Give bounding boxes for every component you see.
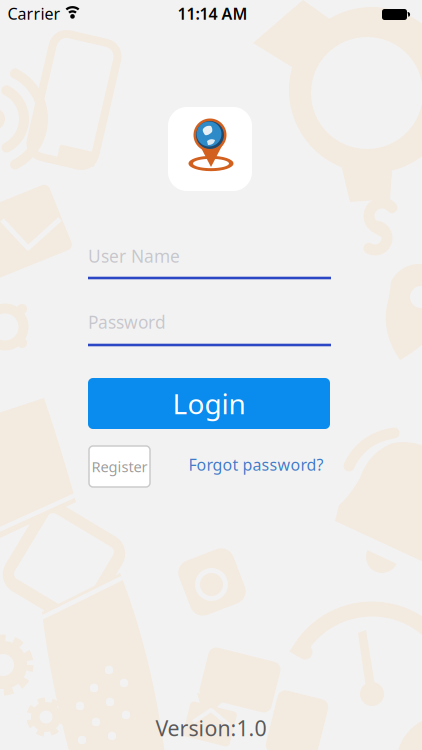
button[interactable]: Register	[89, 446, 150, 487]
staticText: 11:14 AM	[177, 3, 247, 24]
staticText: Login	[172, 385, 245, 422]
staticText: Version:1.0	[155, 714, 266, 742]
staticText: Register	[91, 457, 147, 476]
staticText: User Name	[88, 244, 180, 267]
staticText: Password	[88, 310, 166, 333]
staticText: Forgot password?	[188, 454, 323, 475]
button[interactable]: Forgot password?	[188, 454, 323, 475]
button[interactable]: Login	[88, 378, 330, 429]
staticText: Carrier	[7, 3, 60, 24]
